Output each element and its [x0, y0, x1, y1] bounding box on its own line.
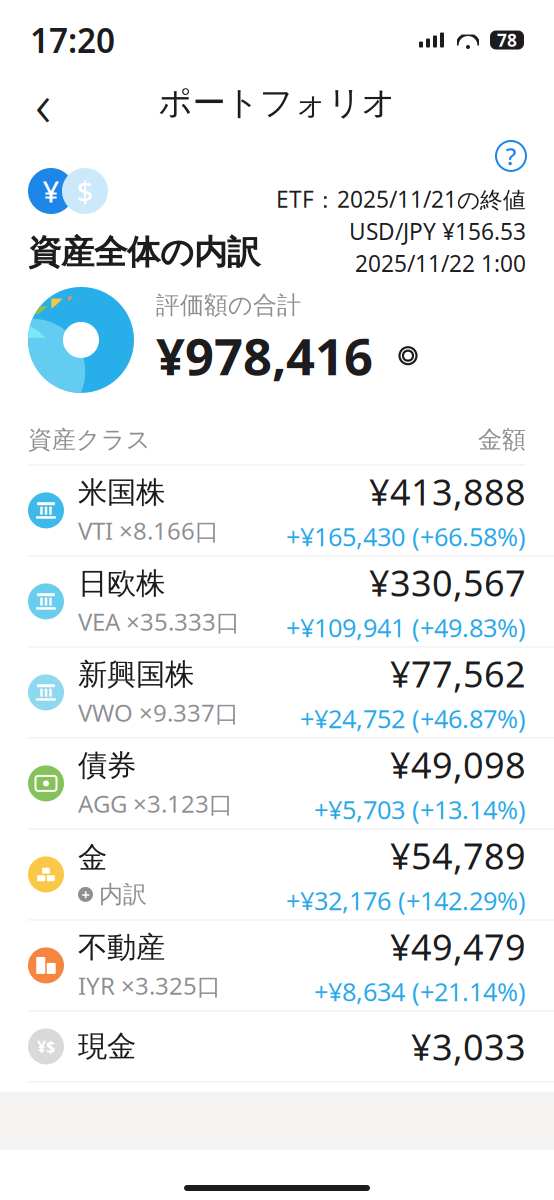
staticText: ¥978,416	[156, 322, 373, 389]
staticText: 債券	[78, 747, 136, 783]
staticText: AGG ×3.123口	[78, 787, 233, 819]
button[interactable]: 米国株	[0, 465, 554, 556]
button[interactable]: ヘルプ	[496, 140, 526, 172]
staticText: 内訳	[99, 880, 147, 909]
staticText: ¥49,479	[390, 923, 526, 970]
staticText: ¥$	[37, 1036, 55, 1057]
staticText: ¥77,562	[390, 650, 526, 697]
button[interactable]: 不動産	[0, 920, 554, 1011]
staticText: USD/JPY ¥156.53	[349, 216, 526, 246]
button[interactable]: 米ドルで表示	[62, 168, 108, 214]
staticText: +¥32,176 (+142.29%)	[286, 883, 526, 917]
staticText: ‹	[35, 62, 51, 144]
staticText: +¥8,634 (+21.14%)	[314, 974, 526, 1008]
staticText: 資産全体の内訳	[28, 232, 260, 273]
staticText: ¥413,888	[369, 468, 526, 515]
button[interactable]: 日欧株	[0, 556, 554, 647]
staticText: 78	[497, 28, 517, 51]
staticText: ¥	[42, 171, 59, 210]
staticText: 2025/11/22 1:00	[355, 248, 526, 278]
staticText: +¥24,752 (+46.87%)	[300, 701, 526, 735]
staticText: 日欧株	[78, 565, 165, 601]
staticText: +¥109,941 (+49.83%)	[286, 610, 526, 644]
staticText: 資産クラス	[28, 425, 151, 454]
staticText: 評価額の合計	[156, 291, 301, 320]
staticText: 不動産	[78, 929, 165, 965]
staticText: 新興国株	[78, 656, 194, 692]
staticText: ¥49,098	[390, 741, 526, 788]
staticText: ¥3,033	[411, 1022, 526, 1070]
button[interactable]: 日本円で表示	[28, 168, 74, 214]
staticText: ポートフォリオ	[158, 82, 395, 123]
staticText: +¥165,430 (+66.58%)	[286, 519, 526, 553]
button[interactable]: 金額を隠す	[391, 343, 425, 369]
staticText: ¥54,789	[390, 832, 526, 879]
staticText: 17:20	[30, 18, 115, 62]
button[interactable]: ¥$	[0, 1011, 554, 1082]
button[interactable]: 新興国株	[0, 647, 554, 738]
staticText: ETF：2025/11/21の終値	[276, 184, 526, 214]
staticText: VEA ×35.333口	[78, 605, 240, 637]
staticText: 米国株	[78, 474, 165, 510]
staticText: +	[81, 885, 89, 904]
staticText: +¥5,703 (+13.14%)	[314, 792, 526, 826]
button[interactable]: 戻る	[16, 76, 70, 130]
staticText: VWO ×9.337口	[78, 696, 239, 728]
staticText: $	[76, 171, 93, 210]
staticText: ¥330,567	[369, 559, 526, 606]
staticText: IYR ×3.325口	[78, 969, 221, 1001]
button[interactable]: 金	[0, 829, 554, 920]
button[interactable]: 債券	[0, 738, 554, 829]
staticText: 金	[78, 840, 107, 876]
staticText: 現金	[78, 1028, 136, 1064]
staticText: VTI ×8.166口	[78, 514, 219, 546]
staticText: ?	[505, 140, 516, 172]
staticText: 金額	[478, 425, 526, 454]
